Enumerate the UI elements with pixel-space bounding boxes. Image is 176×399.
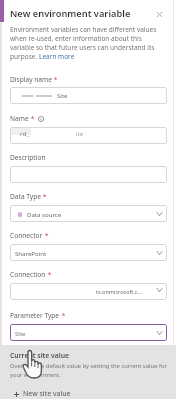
staticText: Site [57, 91, 68, 99]
button[interactable]: ts.onmicrosoft.c... [10, 283, 167, 300]
button[interactable]: Close [152, 7, 166, 21]
staticText: Data source [27, 210, 62, 218]
staticText: ts.onmicrosoft.c... [96, 288, 142, 295]
staticText: * [46, 270, 52, 279]
staticText: Current site value [10, 351, 69, 360]
staticText: Name [10, 114, 29, 123]
staticText: Connector [10, 231, 43, 240]
staticText: Parameter Type [10, 311, 60, 320]
button[interactable]: Site [10, 87, 167, 104]
button[interactable]: Site [10, 324, 167, 341]
staticText: Site [15, 329, 26, 337]
staticText: * [41, 192, 47, 201]
button[interactable]: SharePoint [10, 244, 167, 261]
staticText: Data Type [10, 192, 41, 201]
staticText: New environment variable [10, 7, 131, 20]
staticText: New site value [23, 389, 71, 399]
staticText: Environment variables can have different… [10, 25, 157, 34]
staticText: SharePoint [15, 249, 47, 257]
staticText: variable so that future users can unders… [10, 43, 155, 52]
staticText: Display name [10, 75, 52, 84]
staticText: purpose. [10, 52, 39, 61]
staticText: rd_ [20, 129, 29, 137]
button[interactable]: Data source [10, 205, 167, 222]
staticText: * [29, 114, 35, 123]
staticText: Description [10, 153, 46, 162]
staticText: Connection [10, 270, 46, 279]
button[interactable]: Learn more [39, 52, 75, 61]
staticText: Override the default value by setting th… [10, 362, 167, 370]
staticText: * [52, 75, 58, 84]
button[interactable]: rd_ [10, 127, 167, 144]
staticText: * [43, 231, 49, 240]
staticText: * [60, 311, 66, 320]
staticText: ite [76, 129, 84, 137]
staticText: when re-used, enter information about th… [10, 34, 142, 43]
staticText: your environment. [10, 371, 61, 379]
button[interactable] [10, 166, 167, 183]
button[interactable]: New site value [14, 389, 71, 399]
